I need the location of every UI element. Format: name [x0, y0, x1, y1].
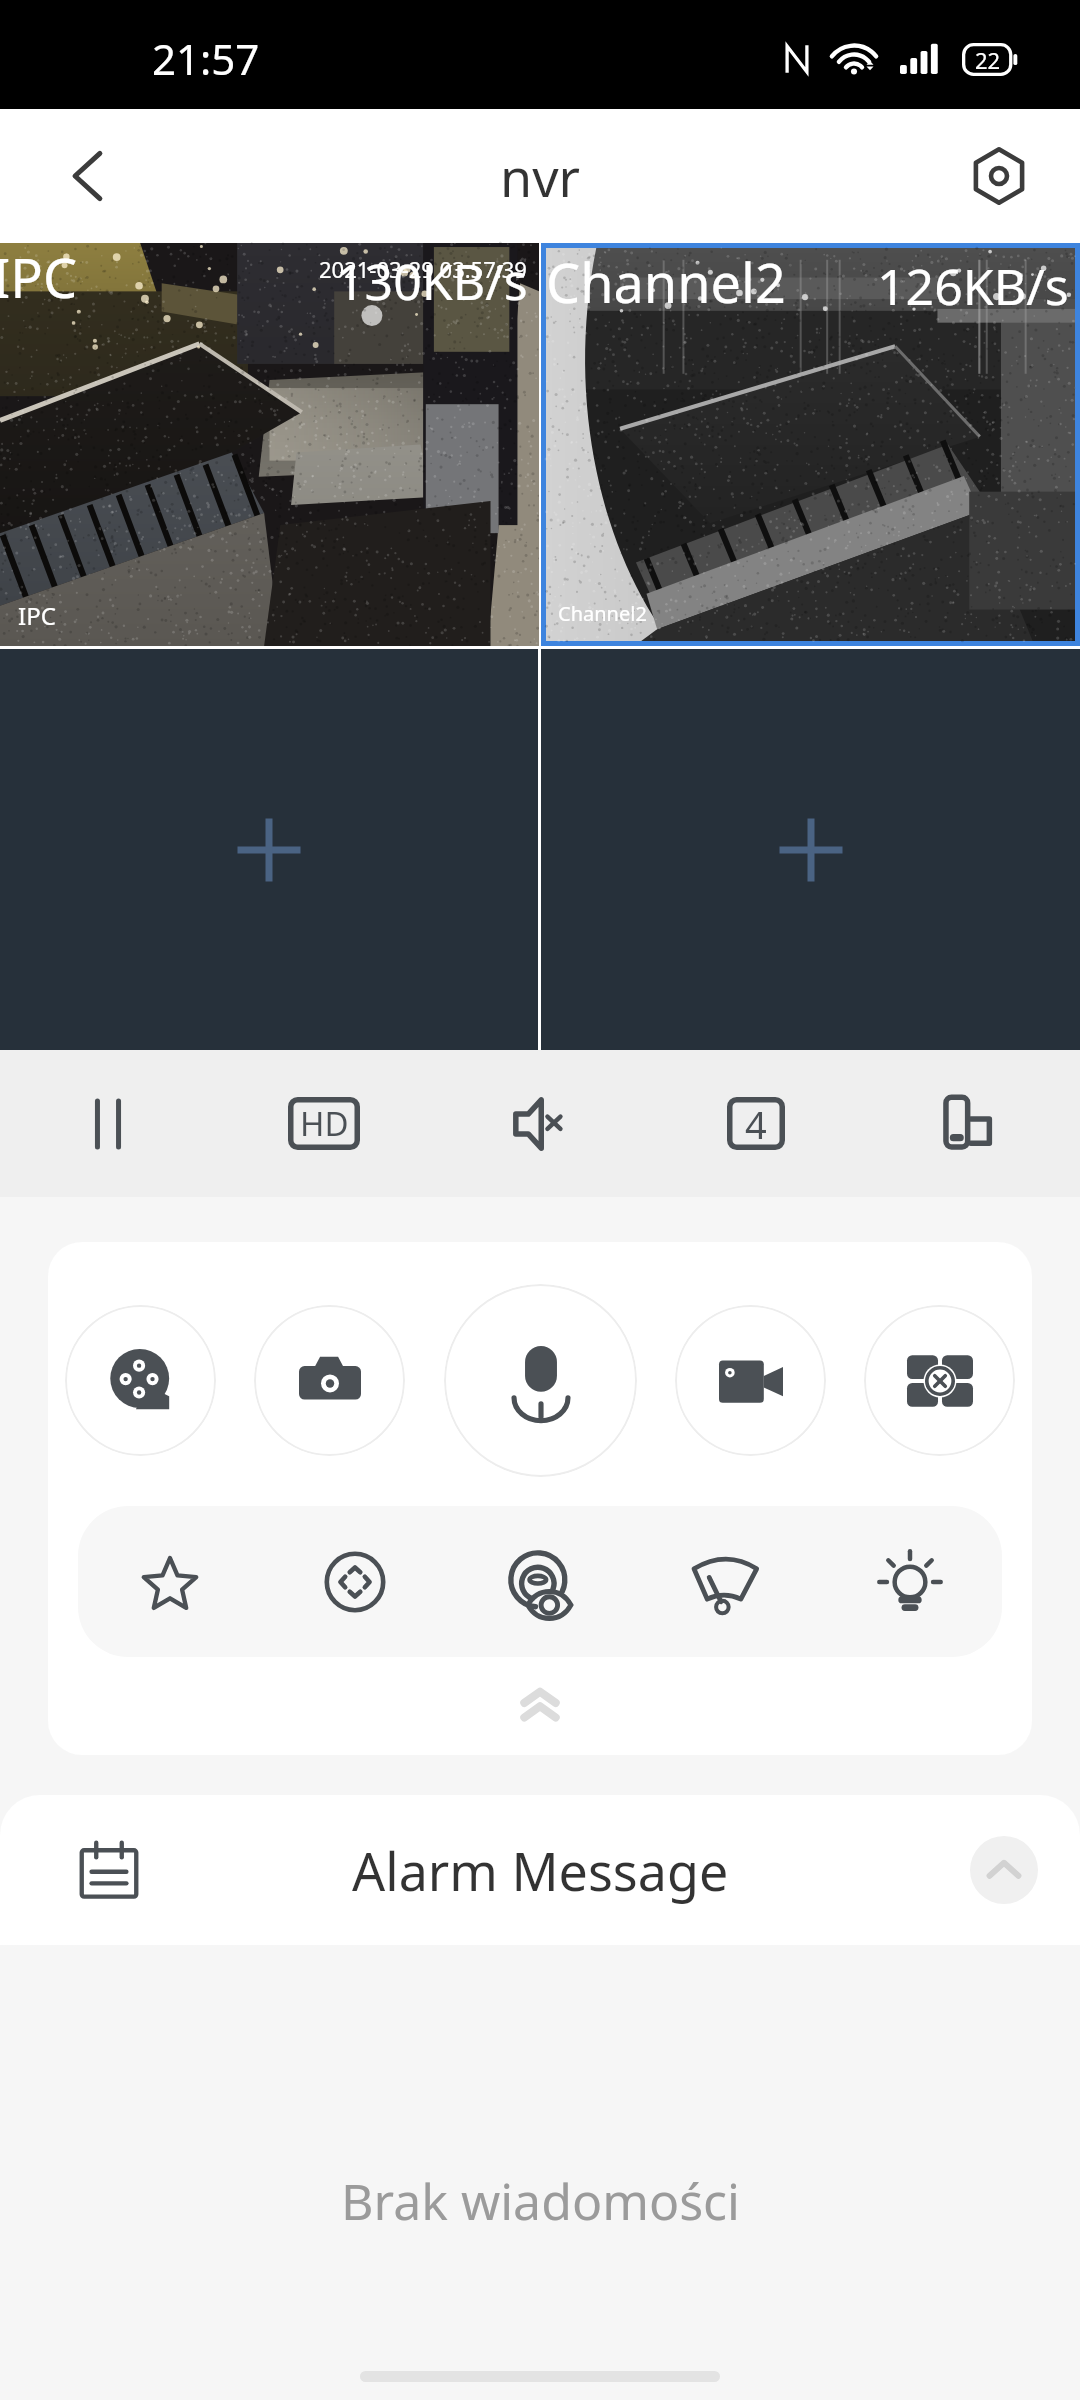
button[interactable]: Pause: [0, 1050, 216, 1197]
button[interactable]: Pan tilt zoom: [295, 1522, 415, 1642]
button[interactable]: Expand alarm messages: [970, 1836, 1038, 1904]
button[interactable]: Four channel layout: [648, 1050, 864, 1197]
button[interactable]: Alarm Message: [0, 1795, 1080, 1945]
button[interactable]: Add camera: [0, 649, 538, 1050]
button[interactable]: HD quality: [216, 1050, 432, 1197]
staticText: nvr: [500, 141, 581, 212]
button[interactable]: Wiper: [665, 1522, 785, 1642]
button[interactable]: Add camera: [541, 649, 1080, 1050]
button[interactable]: Mute: [432, 1050, 648, 1197]
button[interactable]: Microphone: [444, 1284, 637, 1477]
staticText: IPC: [18, 599, 56, 632]
staticText: 4: [745, 1098, 767, 1150]
button[interactable]: Settings: [944, 121, 1054, 231]
button[interactable]: Back: [28, 116, 148, 236]
button[interactable]: Snapshot: [254, 1305, 405, 1456]
staticText: Channel2: [558, 600, 647, 627]
staticText: 22: [975, 45, 1001, 75]
button[interactable]: Close channel: [864, 1305, 1015, 1456]
button[interactable]: Rotate screen: [864, 1050, 1080, 1197]
staticText: 2021-03-29 03:57:39: [319, 254, 527, 284]
staticText: HD: [300, 1101, 349, 1146]
button[interactable]: Talk: [65, 1305, 216, 1456]
button[interactable]: Light: [850, 1522, 970, 1642]
button[interactable]: Collapse panel: [48, 1657, 1032, 1755]
staticText: Alarm Message: [352, 1835, 729, 1906]
staticText: IPC: [0, 240, 78, 314]
button[interactable]: Favourite: [110, 1522, 230, 1642]
button[interactable]: Preview: [480, 1522, 600, 1642]
staticText: Channel2: [546, 245, 786, 319]
staticText: Brak wiadomości: [341, 2167, 740, 2235]
staticText: 126KB/s: [877, 252, 1069, 320]
staticText: 21:57: [152, 30, 260, 87]
button[interactable]: Record video: [675, 1305, 826, 1456]
staticText: 130KB/s: [336, 247, 528, 315]
